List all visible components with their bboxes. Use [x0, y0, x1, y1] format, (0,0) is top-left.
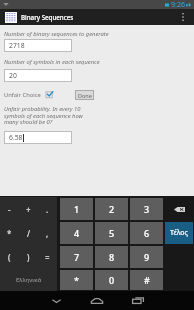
button[interactable]: Unfair Choice — [4, 89, 41, 101]
button[interactable]: 1 — [60, 198, 93, 220]
button[interactable]: Ελληνικά — [0, 269, 57, 291]
staticText: 9:26 — [171, 0, 185, 9]
staticText: 7 — [74, 251, 80, 263]
staticText: . — [46, 204, 49, 215]
button[interactable]: 0 — [95, 270, 128, 290]
staticText: Unfair probability. In every 10 symbols … — [4, 105, 84, 126]
button[interactable]: / — [19, 221, 38, 245]
staticText: ( — [8, 252, 11, 263]
button[interactable]: 4 — [60, 222, 93, 244]
staticText: Τέλος — [170, 228, 188, 238]
staticText: 4 — [74, 227, 80, 239]
staticText: 9 — [144, 251, 150, 263]
staticText: Number of binary sequences to generate — [4, 30, 109, 38]
button[interactable]: 20 — [4, 69, 72, 82]
staticText: 5 — [109, 227, 115, 239]
staticText: Binary Sequences — [21, 13, 74, 21]
staticText: , — [46, 228, 49, 239]
button[interactable]: More options — [175, 9, 191, 25]
button[interactable]: 7 — [60, 246, 93, 268]
button[interactable]: Back — [45, 291, 67, 310]
button[interactable]: * — [0, 221, 19, 245]
button[interactable]: ( — [0, 245, 19, 269]
staticText: 2718 — [9, 41, 25, 50]
staticText: 3 — [144, 203, 150, 215]
button[interactable]: Τέλος — [165, 222, 193, 244]
staticText: Number of symbols in each sequence — [4, 58, 100, 66]
button[interactable]: 6 — [130, 222, 163, 244]
button[interactable]: 3 — [130, 198, 163, 220]
button[interactable]: Backspace — [165, 198, 193, 220]
staticText: 6 — [144, 227, 150, 239]
button[interactable]: 8 — [95, 246, 128, 268]
staticText: / — [27, 228, 31, 239]
staticText: 20 — [9, 71, 17, 80]
button[interactable]: Done — [75, 90, 94, 100]
staticText: + — [26, 204, 31, 215]
staticText: * — [74, 274, 79, 286]
button[interactable]: Unfair Choice — [45, 90, 55, 99]
button[interactable]: = — [38, 245, 57, 269]
staticText: Unfair Choice — [4, 91, 41, 99]
staticText: ) — [27, 252, 30, 263]
staticText: 1 — [74, 203, 80, 215]
button[interactable]: - — [0, 197, 19, 221]
button[interactable]: # — [130, 270, 163, 290]
staticText: Ελληνικά — [16, 276, 42, 284]
button[interactable]: + — [19, 197, 38, 221]
button[interactable]: 9 — [130, 246, 163, 268]
button[interactable]: Home — [86, 291, 108, 310]
button[interactable]: ) — [19, 245, 38, 269]
staticText: = — [45, 252, 50, 263]
button[interactable]: 2718 — [4, 39, 72, 52]
button[interactable]: 2 — [95, 198, 128, 220]
staticText: Done — [78, 92, 92, 99]
staticText: 2 — [109, 203, 115, 215]
button[interactable]: , — [38, 221, 57, 245]
staticText: * — [7, 228, 12, 239]
staticText: # — [144, 274, 150, 286]
button[interactable]: * — [60, 270, 93, 290]
staticText: 8 — [109, 251, 115, 263]
button[interactable]: Recents — [127, 291, 149, 310]
staticText: 0 — [109, 274, 115, 286]
button[interactable]: 6.58 — [4, 131, 72, 144]
button[interactable]: 5 — [95, 222, 128, 244]
staticText: - — [8, 204, 11, 215]
button[interactable]: . — [38, 197, 57, 221]
staticText: 6.58 — [9, 133, 23, 142]
